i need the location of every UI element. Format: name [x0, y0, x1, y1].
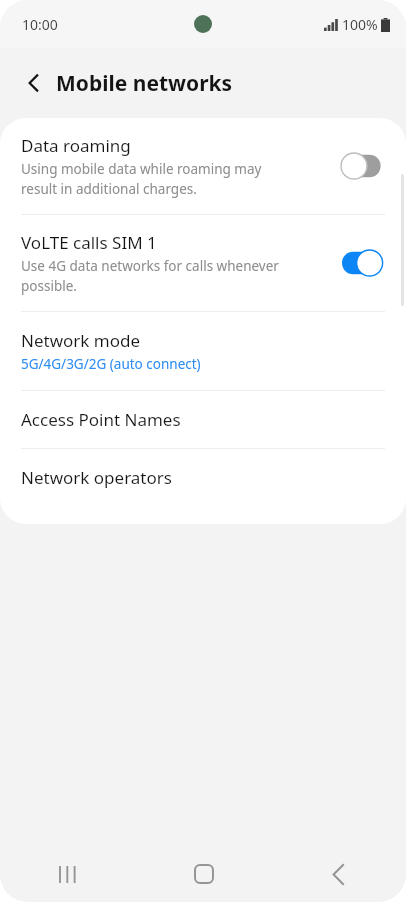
staticText: Use 4G data networks for calls whenever … [21, 257, 279, 295]
button[interactable]: Back [271, 846, 406, 902]
staticText: 5G/4G/3G/2G (auto connect) [21, 355, 201, 373]
staticText: Access Point Names [21, 408, 181, 431]
button[interactable]: Off [342, 152, 388, 180]
button[interactable]: Recents [0, 846, 136, 902]
staticText: Network operators [21, 466, 172, 489]
staticText: 100% [342, 15, 378, 34]
button[interactable]: Network operators [0, 449, 406, 506]
button[interactable]: Network mode [0, 312, 406, 390]
staticText: Data roaming [21, 134, 131, 157]
button[interactable]: On [342, 249, 388, 277]
staticText: VoLTE calls SIM 1 [21, 231, 157, 254]
staticText: 10:00 [22, 15, 58, 34]
staticText: Using mobile data while roaming may resu… [21, 160, 262, 198]
button[interactable]: Back [12, 61, 56, 105]
staticText: Network mode [21, 329, 141, 352]
staticText: Mobile networks [56, 69, 233, 98]
button[interactable]: Data roaming [0, 118, 406, 214]
button[interactable]: VoLTE calls SIM 1 [0, 215, 406, 311]
button[interactable]: Access Point Names [0, 391, 406, 448]
button[interactable]: Home [136, 846, 271, 902]
